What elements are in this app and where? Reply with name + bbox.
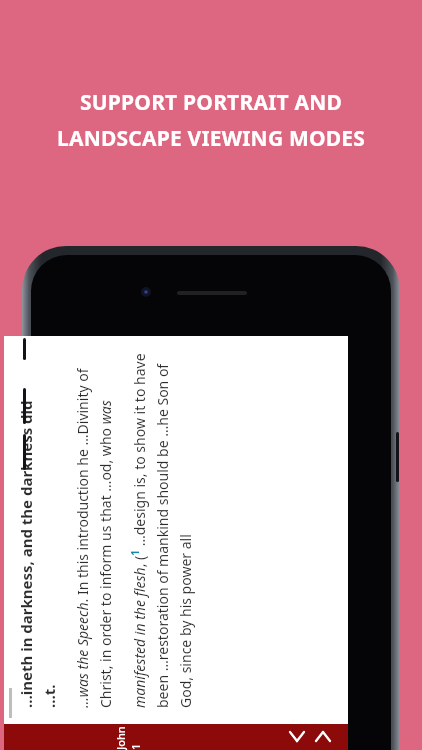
staticText: …was the Speech. In this introduction he…	[73, 348, 195, 708]
staticText: LANDSCAPE VIEWING MODES	[57, 124, 366, 153]
staticText: …ineth in darkness, and the darkness did…	[16, 400, 59, 708]
staticText: John 1	[113, 724, 143, 750]
button[interactable]: Previous chapter	[284, 724, 310, 750]
button[interactable]: John 1	[93, 724, 163, 750]
button[interactable]: Next chapter	[310, 724, 336, 750]
staticText: SUPPORT PORTRAIT AND	[80, 88, 343, 117]
